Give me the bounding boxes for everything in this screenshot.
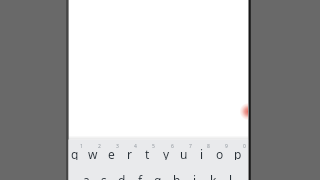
button[interactable] — [168, 168, 186, 180]
staticText: d — [118, 172, 126, 180]
button[interactable] — [95, 168, 113, 180]
button[interactable] — [238, 100, 249, 122]
staticText: p — [234, 146, 242, 160]
staticText: y — [163, 146, 170, 160]
staticText: 5 — [152, 143, 155, 149]
staticText: 6 — [171, 143, 174, 149]
staticText: 4 — [134, 143, 137, 149]
button[interactable] — [102, 141, 120, 167]
staticText: 9 — [225, 143, 228, 149]
button[interactable] — [77, 168, 95, 180]
button[interactable] — [157, 141, 175, 167]
staticText: 3 — [116, 143, 119, 149]
button[interactable] — [186, 168, 204, 180]
staticText: u — [180, 146, 188, 160]
staticText: j — [193, 172, 197, 180]
button[interactable] — [131, 168, 149, 180]
button[interactable] — [120, 141, 138, 167]
staticText: 2 — [98, 143, 101, 149]
staticText: 0 — [243, 143, 246, 149]
staticText: k — [210, 172, 217, 180]
staticText: a — [83, 172, 90, 180]
button[interactable] — [113, 168, 131, 180]
staticText: h — [173, 172, 181, 180]
staticText: g — [154, 172, 162, 180]
staticText: e — [108, 146, 115, 160]
staticText: w — [88, 146, 98, 160]
staticText: 7 — [189, 143, 192, 149]
button[interactable] — [222, 168, 240, 180]
button[interactable] — [66, 141, 84, 167]
button[interactable] — [193, 141, 211, 167]
button[interactable] — [149, 168, 167, 180]
staticText: s — [101, 172, 107, 180]
staticText: r — [127, 146, 132, 160]
staticText: i — [200, 146, 204, 160]
button[interactable] — [211, 141, 229, 167]
button[interactable] — [84, 141, 102, 167]
staticText: q — [71, 146, 79, 160]
button[interactable] — [204, 168, 222, 180]
button[interactable] — [175, 141, 193, 167]
staticText: o — [216, 146, 224, 160]
button[interactable] — [229, 141, 247, 167]
button[interactable] — [138, 141, 156, 167]
staticText: t — [145, 146, 150, 160]
staticText: l — [229, 172, 233, 180]
staticText: 8 — [207, 143, 210, 149]
staticText: 1 — [80, 143, 83, 149]
staticText: f — [138, 172, 143, 180]
